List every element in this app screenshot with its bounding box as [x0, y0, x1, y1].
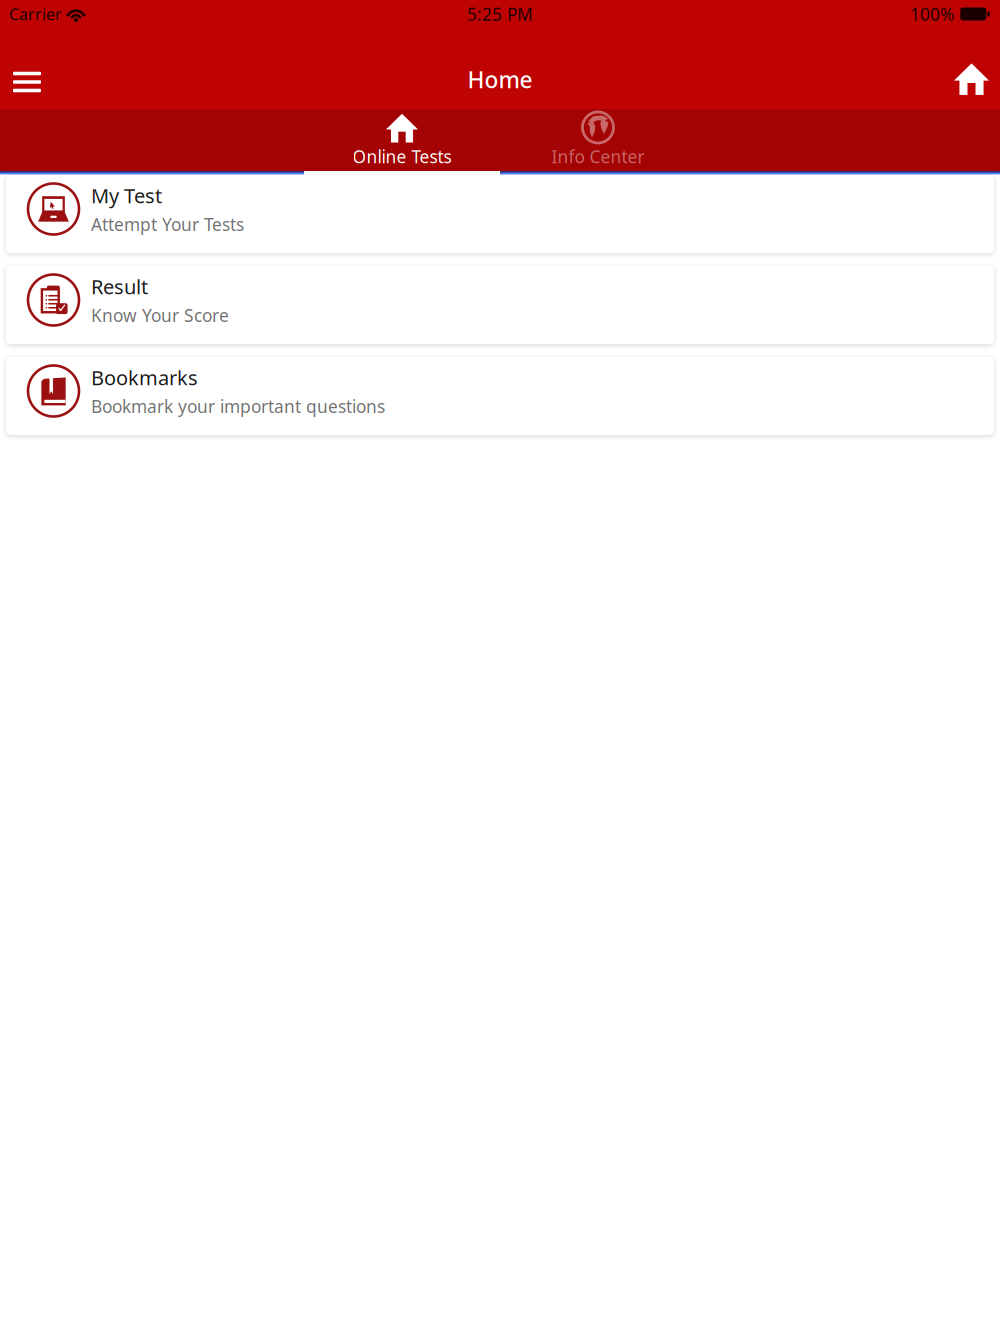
staticText: Online Tests — [352, 145, 451, 168]
button[interactable]: Info Center — [500, 109, 696, 175]
button[interactable]: Home — [935, 40, 1000, 108]
staticText: Result — [91, 273, 148, 300]
staticText: Carrier — [9, 3, 62, 25]
button[interactable]: My Test — [6, 175, 994, 253]
button[interactable]: Bookmarks — [6, 357, 994, 435]
staticText: Attempt Your Tests — [91, 213, 244, 236]
button[interactable]: Result — [6, 266, 994, 344]
staticText: Bookmarks — [91, 364, 198, 391]
staticText: My Test — [91, 182, 162, 209]
staticText: Know Your Score — [91, 304, 229, 327]
button[interactable]: Menu — [0, 42, 63, 107]
staticText: Home — [467, 64, 532, 94]
button[interactable]: Online Tests — [304, 109, 500, 175]
staticText: Info Center — [551, 145, 644, 168]
staticText: Bookmark your important questions — [91, 395, 385, 418]
staticText: 100% — [910, 2, 954, 25]
staticText: 5:25 PM — [467, 2, 533, 25]
